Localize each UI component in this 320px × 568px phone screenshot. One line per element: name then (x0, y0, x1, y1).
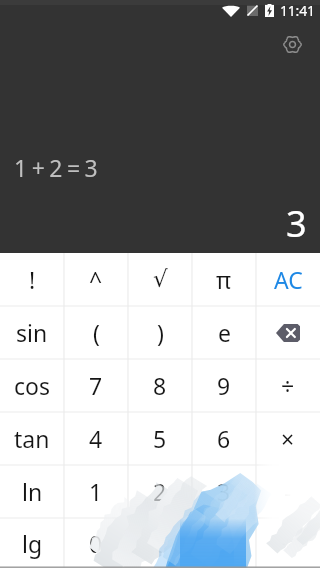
staticText: 1 + 2 = 3 (14, 152, 97, 183)
button[interactable]: ! (0, 253, 64, 306)
staticText: 11:41 (280, 1, 315, 20)
staticText: 3 (217, 476, 231, 507)
staticText: 3 (286, 199, 307, 248)
button[interactable]: cos (0, 359, 64, 412)
button[interactable]: 9 (192, 359, 256, 412)
staticText: AC (274, 264, 303, 295)
button[interactable]: sin (0, 306, 64, 359)
button[interactable]: AC (256, 253, 320, 306)
staticText: 2 (153, 476, 167, 507)
staticText: cos (14, 370, 50, 401)
staticText: lg (22, 528, 43, 559)
button[interactable]: - (256, 465, 320, 518)
staticText: × (281, 423, 295, 454)
staticText: 8 (153, 370, 167, 401)
staticText: tan (14, 423, 50, 454)
button[interactable]: Settings (278, 30, 306, 58)
button[interactable]: = (192, 518, 256, 568)
other: Delete (276, 324, 300, 342)
button[interactable]: ÷ (256, 359, 320, 412)
button[interactable]: e (192, 306, 256, 359)
staticText: ) (157, 317, 164, 348)
staticText: 6 (217, 423, 231, 454)
button[interactable]: ln (0, 465, 64, 518)
button[interactable]: Delete (256, 306, 320, 359)
button[interactable]: 2 (128, 465, 192, 518)
button[interactable]: π (192, 253, 256, 306)
staticText: ln (22, 476, 43, 507)
staticText: √ (153, 266, 168, 293)
staticText: ^ (89, 264, 103, 295)
button[interactable]: 6 (192, 412, 256, 465)
button[interactable]: . (128, 518, 192, 568)
button[interactable]: tan (0, 412, 64, 465)
button[interactable]: × (256, 412, 320, 465)
button[interactable]: 5 (128, 412, 192, 465)
staticText: 5 (153, 423, 167, 454)
staticText: 9 (217, 370, 231, 401)
button[interactable]: 8 (128, 359, 192, 412)
button[interactable]: 4 (64, 412, 128, 465)
button[interactable]: 1 (64, 465, 128, 518)
staticText: 7 (89, 370, 103, 401)
staticText: 4 (89, 423, 103, 454)
button[interactable]: lg (0, 518, 64, 568)
button[interactable]: 7 (64, 359, 128, 412)
button[interactable]: 0 (64, 518, 128, 568)
staticText: ! (29, 264, 36, 295)
button[interactable]: ) (128, 306, 192, 359)
button[interactable]: + (256, 518, 320, 568)
staticText: ( (93, 317, 100, 348)
button[interactable]: ^ (64, 253, 128, 306)
staticText: sin (16, 317, 48, 348)
button[interactable]: 3 (192, 465, 256, 518)
staticText: 1 (89, 476, 103, 507)
button[interactable]: ( (64, 306, 128, 359)
staticText: = (217, 528, 231, 559)
staticText: e (218, 317, 231, 348)
staticText: ÷ (281, 370, 295, 401)
staticText: . (157, 528, 164, 559)
staticText: π (216, 264, 232, 295)
button[interactable]: √ (128, 253, 192, 306)
staticText: + (281, 528, 295, 559)
staticText: 0 (89, 528, 103, 559)
